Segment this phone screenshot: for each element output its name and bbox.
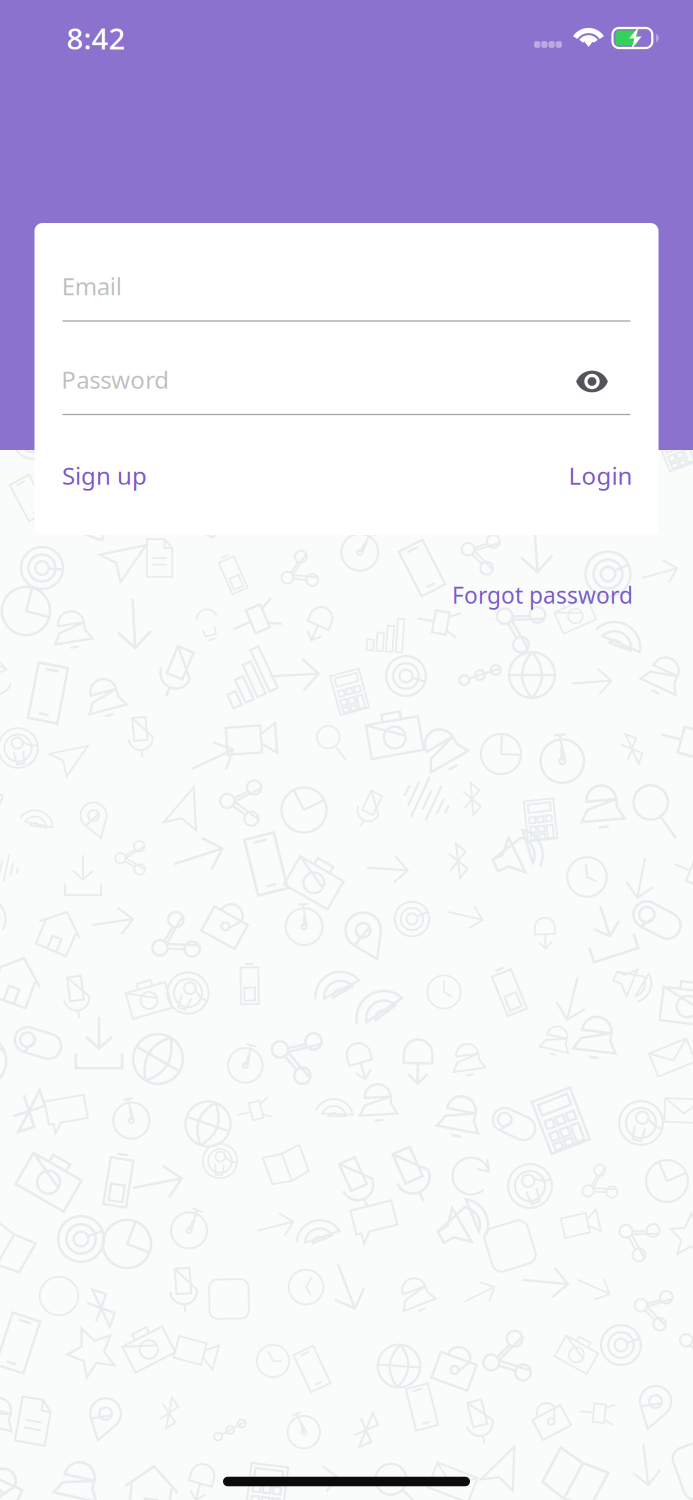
staticText: 8:42 [66, 18, 125, 57]
staticText: Forgot password [452, 580, 633, 610]
button[interactable]: Forgot password [442, 572, 642, 618]
button[interactable]: Login [562, 452, 638, 498]
button[interactable]: Email [62, 265, 630, 323]
staticText: Email [62, 270, 122, 302]
button[interactable]: Password [62, 358, 630, 416]
button[interactable]: Sign up [54, 452, 154, 498]
staticText: Login [568, 460, 632, 491]
staticText: Sign up [62, 460, 147, 491]
button[interactable]: Show password [566, 360, 618, 402]
staticText: Password [61, 364, 169, 395]
